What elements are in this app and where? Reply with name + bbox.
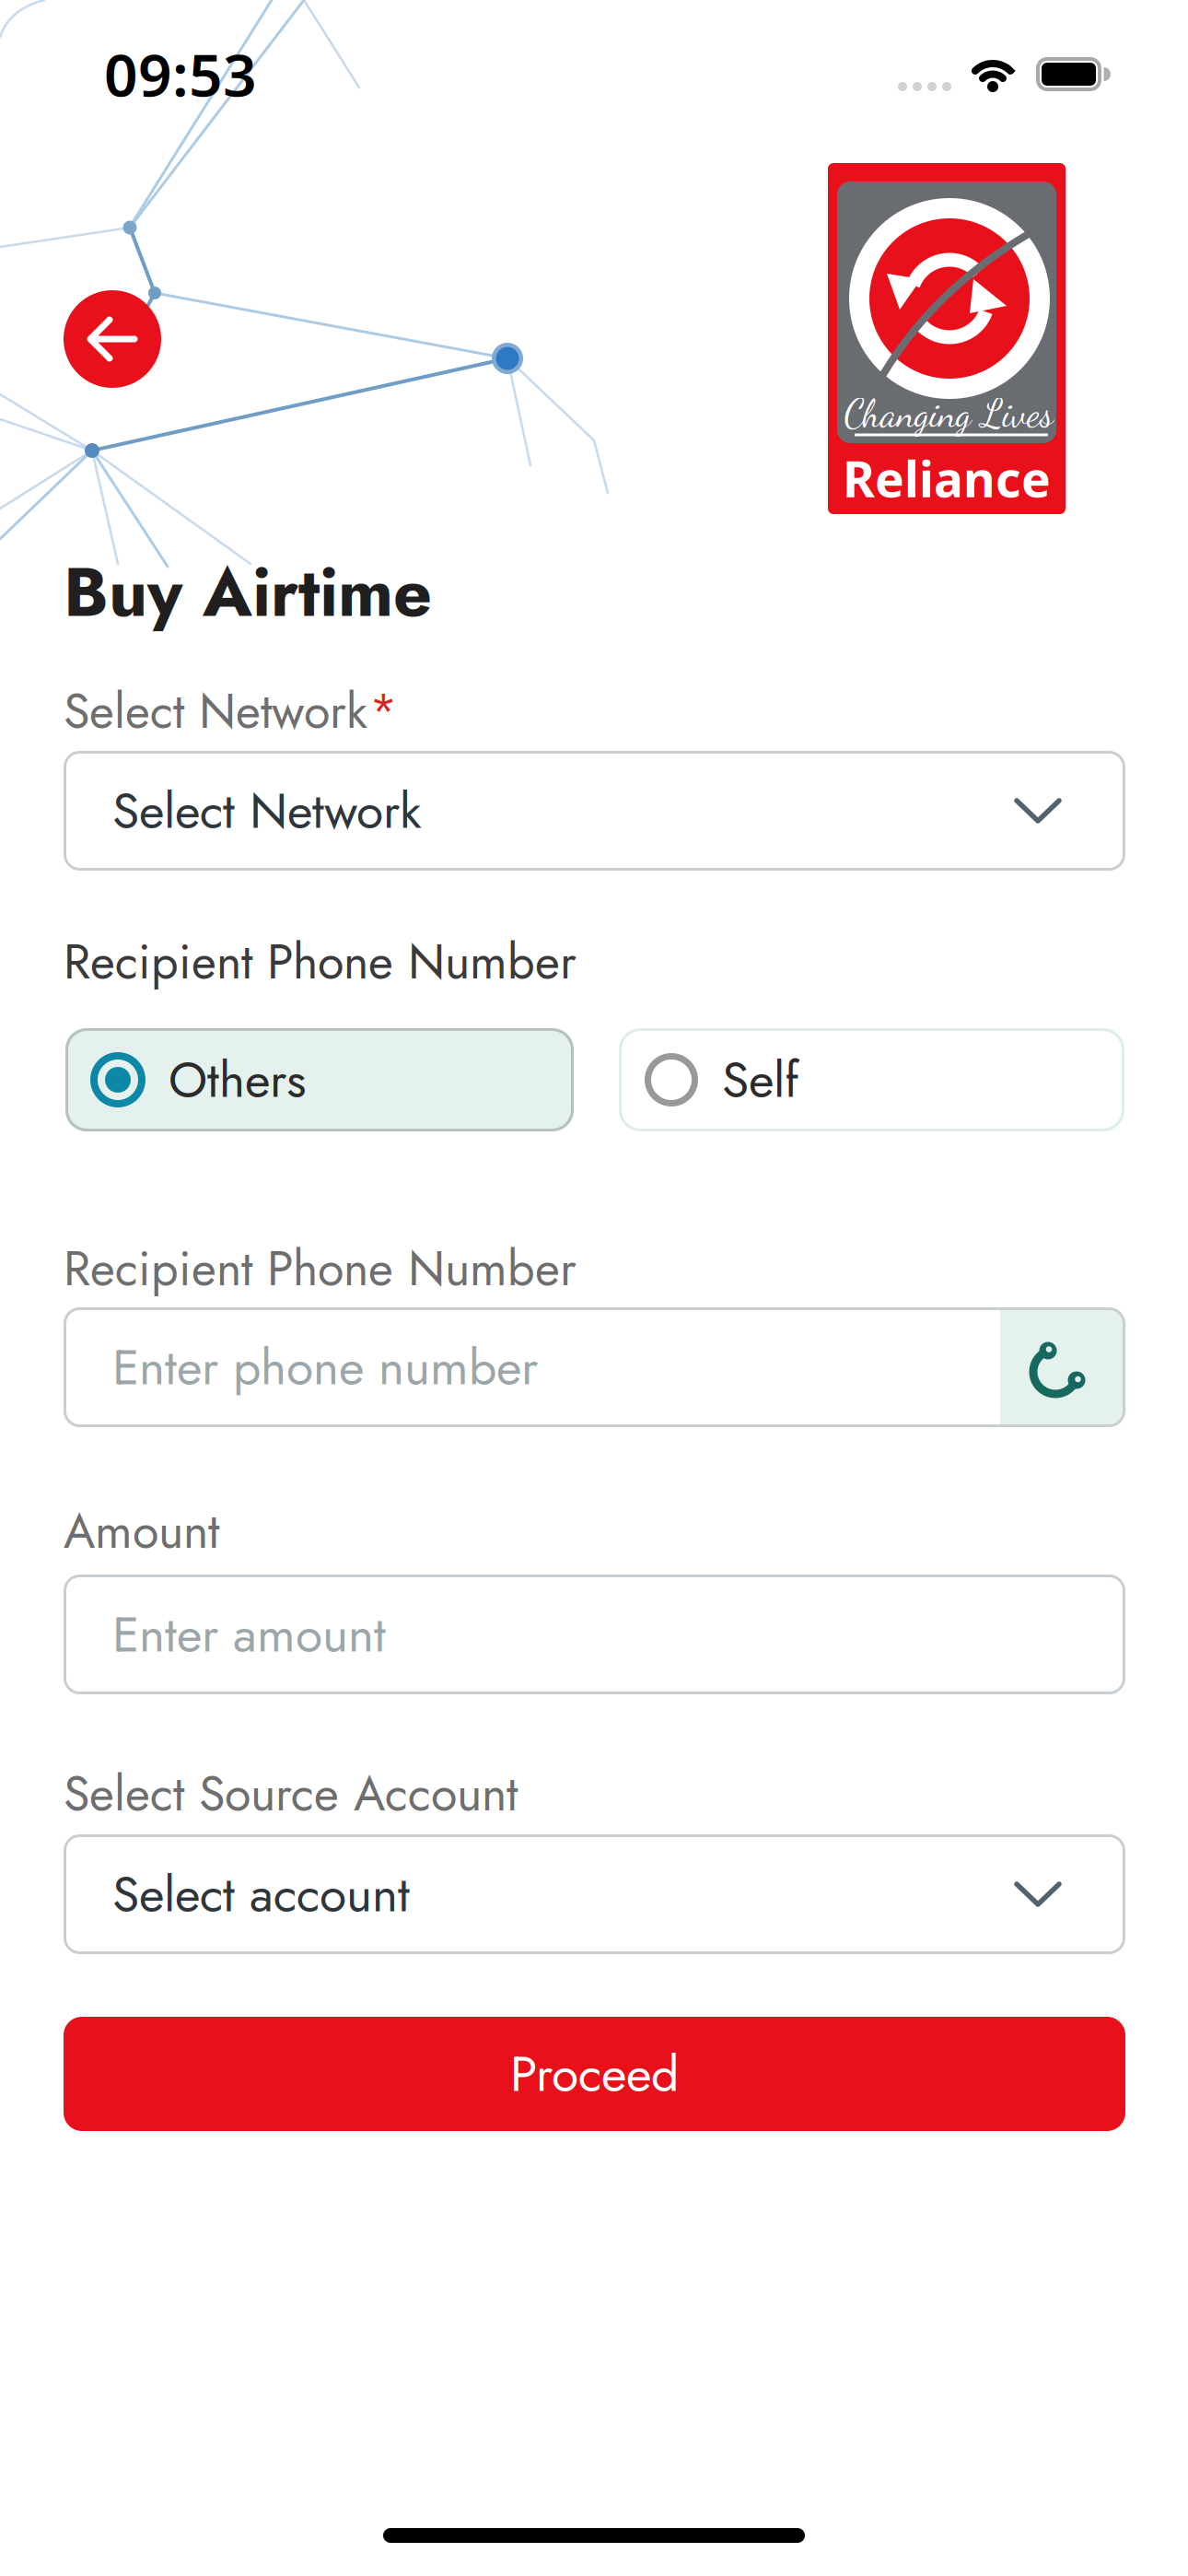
staticText: Changing Lives (844, 391, 1053, 437)
button[interactable]: Self (619, 1028, 1124, 1131)
staticText: Self (722, 1044, 798, 1115)
staticText: Proceed (510, 2038, 679, 2109)
staticText: Buy Airtime (64, 544, 432, 641)
staticText: Select Network (112, 775, 421, 846)
staticText: Select account (112, 1859, 410, 1930)
staticText: Enter amount (112, 1599, 386, 1670)
button[interactable]: Others (65, 1028, 574, 1131)
staticText: Amount (64, 1497, 219, 1566)
button[interactable]: Select Network (64, 751, 1125, 871)
staticText: Recipient Phone Number (64, 927, 577, 996)
staticText: Enter phone number (112, 1332, 538, 1403)
staticText: Others (169, 1044, 306, 1115)
staticText: 09:53 (104, 35, 257, 113)
button[interactable] (64, 290, 161, 388)
staticText: Select Network (64, 677, 367, 746)
staticText: Recipient Phone Number (64, 1234, 577, 1303)
button[interactable]: Enter phone number (64, 1307, 1125, 1427)
staticText: * (369, 677, 398, 746)
button[interactable]: Proceed (64, 2017, 1125, 2131)
staticText: Reliance (843, 446, 1051, 511)
button[interactable]: Enter amount (64, 1575, 1125, 1694)
staticText: Select Source Account (64, 1759, 518, 1828)
button[interactable]: Select account (64, 1834, 1125, 1954)
